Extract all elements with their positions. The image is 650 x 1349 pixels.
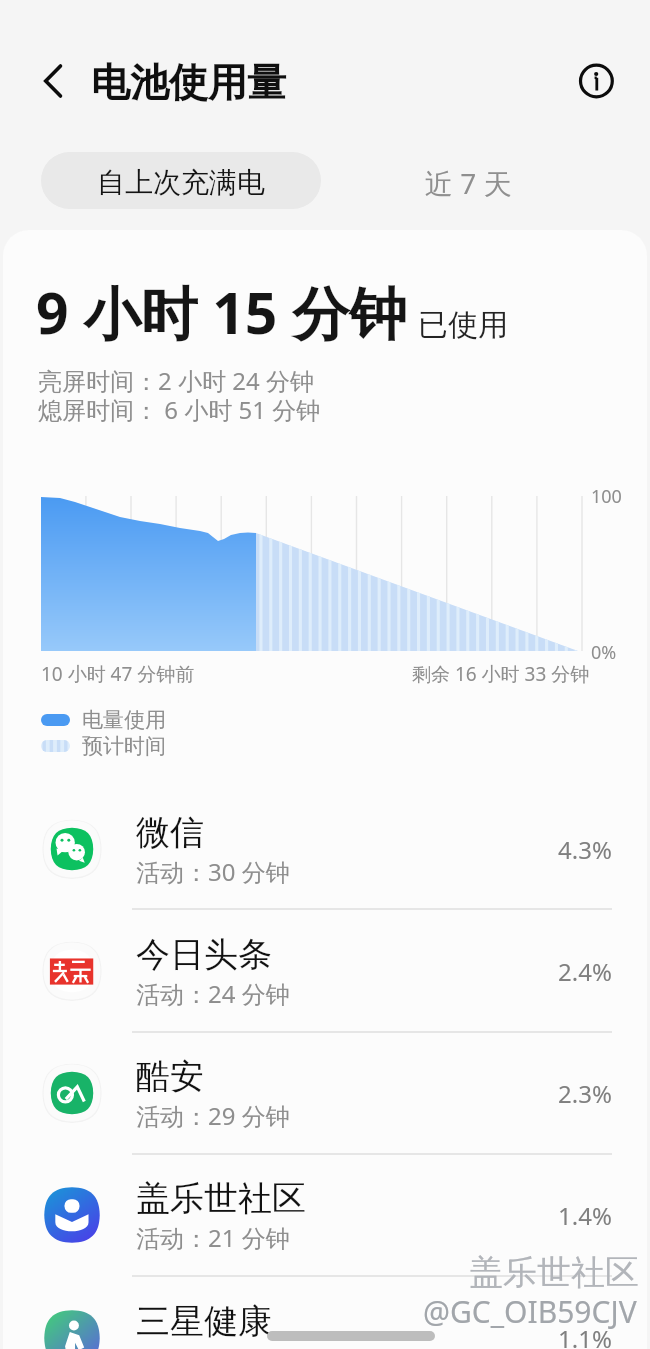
staticText: 9 小时 15 分钟 — [36, 273, 407, 351]
staticText: 100 — [591, 484, 622, 509]
staticText: @GC_OIB59CJV — [423, 1291, 637, 1332]
staticText: 熄屏时间： 6 小时 51 分钟 — [38, 393, 321, 426]
staticText: 0% — [591, 640, 617, 665]
staticText: 1.4% — [558, 1199, 612, 1232]
button[interactable]: 近 7 天 — [388, 152, 548, 209]
staticText: 活动：30 分钟 — [136, 855, 290, 888]
staticText: 活动：29 分钟 — [136, 1099, 290, 1132]
button[interactable]: 今日头条 — [0, 910, 650, 1032]
button[interactable]: Information — [572, 56, 620, 104]
button[interactable]: 酷安 — [0, 1032, 650, 1154]
staticText: 1.1% — [558, 1322, 612, 1349]
button[interactable]: 微信 — [0, 788, 650, 910]
staticText: 盖乐世社区 — [136, 1177, 306, 1220]
staticText: 今日头条 — [136, 933, 272, 976]
staticText: 微信 — [136, 811, 204, 854]
staticText: 2.4% — [558, 955, 612, 988]
staticText: 近 7 天 — [425, 164, 512, 202]
staticText: 已使用 — [418, 306, 508, 344]
staticText: 4.3% — [558, 833, 612, 866]
staticText: 自上次充满电 — [97, 165, 265, 200]
staticText: 预计时间 — [82, 733, 166, 759]
staticText: 酷安 — [136, 1055, 204, 1098]
button[interactable]: Back — [28, 56, 80, 108]
button[interactable]: 自上次充满电 — [41, 152, 321, 209]
staticText: 电池使用量 — [91, 58, 286, 107]
staticText: 活动：21 分钟 — [136, 1221, 290, 1254]
staticText: 2.3% — [558, 1077, 612, 1110]
staticText: 电量使用 — [82, 707, 166, 733]
staticText: 亮屏时间：2 小时 24 分钟 — [38, 364, 314, 397]
staticText: 盖乐世社区 — [469, 1251, 639, 1294]
button[interactable]: 盖乐世社区 — [0, 1154, 650, 1276]
staticText: 10 小时 47 分钟前 — [41, 661, 195, 687]
staticText: 活动：24 分钟 — [136, 977, 290, 1010]
staticText: 三星健康 — [136, 1300, 272, 1343]
staticText: 剩余 16 小时 33 分钟 — [412, 661, 590, 687]
button[interactable]: 三星健康 — [0, 1277, 650, 1349]
